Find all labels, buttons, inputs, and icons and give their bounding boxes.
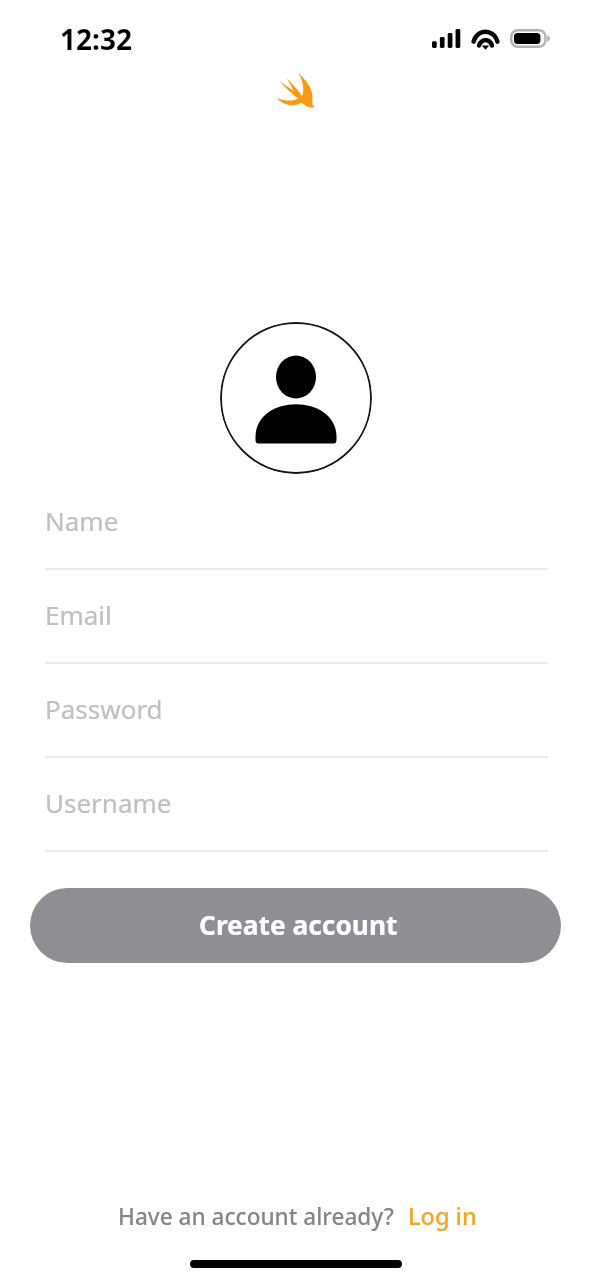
staticText: Have an account already?: [118, 1201, 394, 1232]
button[interactable]: Password: [45, 689, 548, 758]
button[interactable]: Choose profile photo: [220, 322, 372, 474]
staticText: Password: [45, 691, 163, 726]
staticText: Log in: [408, 1200, 477, 1232]
button[interactable]: Log in: [408, 1200, 477, 1232]
staticText: Name: [45, 503, 119, 538]
button[interactable]: Create account: [30, 888, 561, 963]
staticText: Email: [45, 597, 112, 632]
button[interactable]: Email: [45, 595, 548, 664]
button[interactable]: Username: [45, 783, 548, 852]
button[interactable]: Name: [45, 501, 548, 570]
staticText: Create account: [199, 907, 398, 943]
staticText: 12:32: [60, 20, 132, 58]
staticText: Username: [45, 785, 172, 820]
